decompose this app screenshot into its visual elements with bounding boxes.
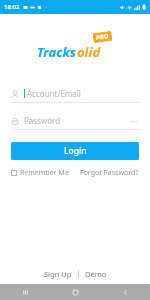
button[interactable]: Sign Up — [38, 266, 78, 282]
staticText: 18:02 — [4, 3, 20, 11]
staticText: Account/Email — [27, 88, 81, 99]
button[interactable]: Recent apps — [0, 284, 50, 300]
staticText: olid — [77, 43, 101, 61]
staticText: Demo — [85, 269, 107, 279]
button[interactable]: Password — [11, 113, 139, 128]
staticText: PRO — [95, 32, 109, 42]
button[interactable]: Demo — [79, 266, 113, 282]
staticText: Login — [64, 145, 87, 157]
button[interactable]: Back — [100, 284, 150, 300]
staticText: Sign Up — [44, 269, 72, 279]
button[interactable]: Login — [11, 142, 139, 160]
button[interactable]: Home — [50, 284, 100, 300]
button[interactable]: Forgot Password? — [80, 168, 139, 178]
staticText: Forgot Password? — [80, 168, 139, 178]
button[interactable]: Remember Me — [11, 168, 69, 178]
staticText: Tracks — [37, 43, 77, 61]
button[interactable]: Account/Email — [11, 86, 139, 101]
staticText: Remember Me — [20, 168, 69, 178]
button[interactable]: Show password — [128, 115, 139, 126]
staticText: Password — [24, 115, 61, 126]
